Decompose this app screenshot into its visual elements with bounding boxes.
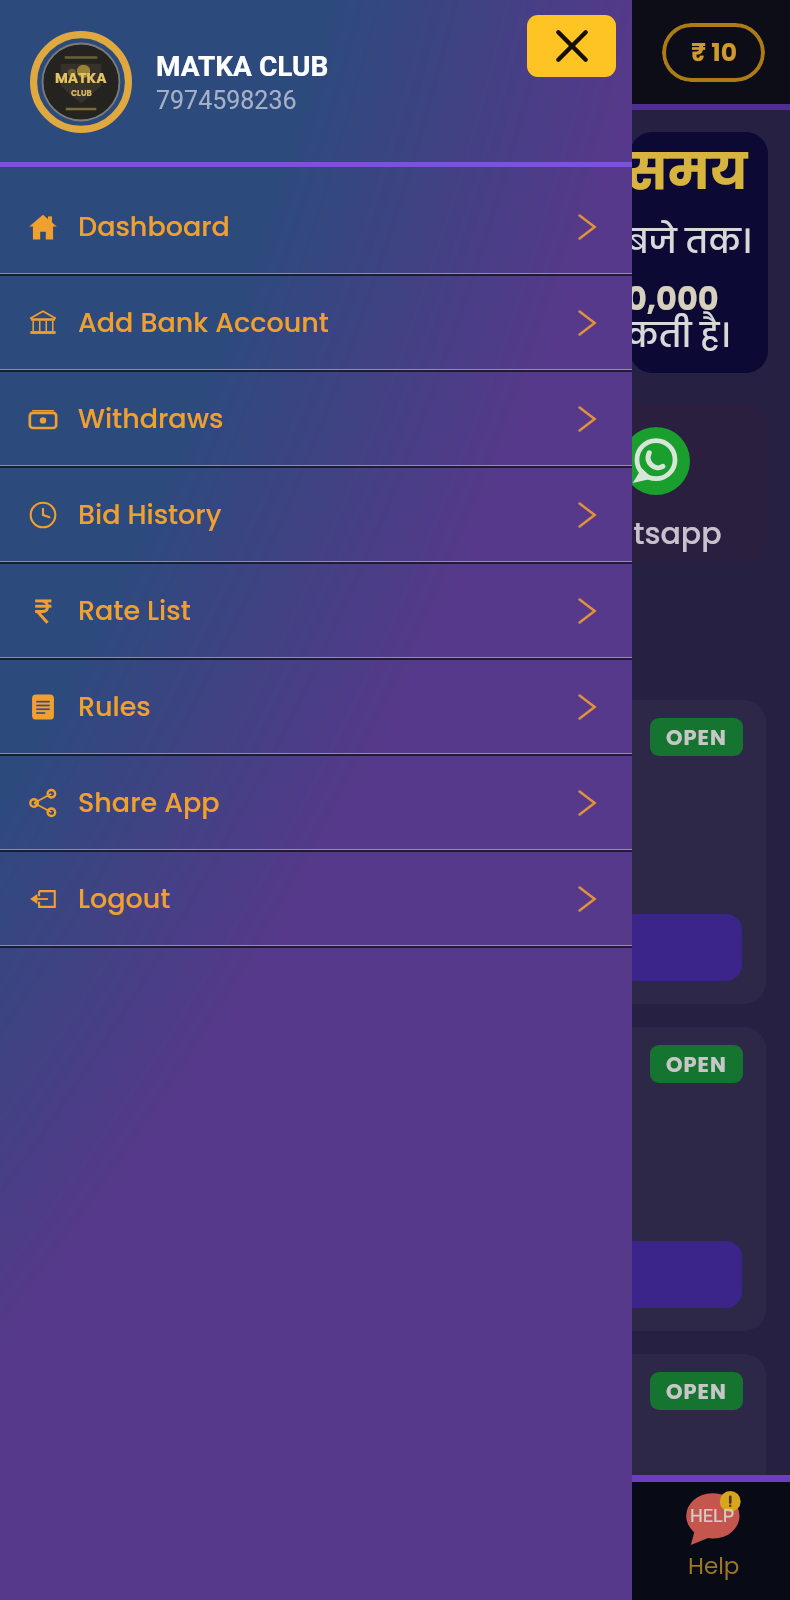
staticText: कती है।: [630, 312, 730, 358]
staticText: 7974598236: [156, 86, 297, 115]
button[interactable]: Logout: [0, 852, 632, 948]
staticText: Dashboard: [78, 208, 230, 246]
button[interactable]: OPEN: [590, 700, 766, 1004]
staticText: CLUB: [71, 88, 92, 99]
staticText: समय: [630, 137, 748, 207]
button[interactable]: OPEN: [590, 1354, 766, 1600]
staticText: MATKA: [55, 68, 107, 88]
button[interactable]: Bid History: [0, 468, 632, 564]
staticText: HELP: [690, 1505, 735, 1526]
staticText: Rate List: [78, 592, 191, 630]
staticText: OPEN: [666, 1377, 727, 1406]
button[interactable]: Withdraws: [0, 372, 632, 468]
staticText: Help: [688, 1550, 740, 1582]
staticText: Add Bank Account: [78, 304, 329, 342]
staticText: atsapp: [613, 513, 722, 555]
staticText: Bid History: [78, 496, 222, 534]
button[interactable]: Rules: [0, 660, 632, 756]
button[interactable]: Add Bank Account: [0, 276, 632, 372]
staticText: Logout: [78, 880, 171, 918]
staticText: 0,000: [630, 276, 719, 321]
button[interactable]: Share App: [0, 756, 632, 852]
button[interactable]: ₹ 10: [662, 23, 765, 82]
staticText: Withdraws: [78, 400, 224, 438]
staticText: OPEN: [666, 723, 727, 752]
staticText: Share App: [78, 784, 220, 822]
button[interactable]: Dashboard: [0, 180, 632, 276]
button[interactable]: OPEN: [590, 1027, 766, 1331]
button[interactable]: HELP: [680, 1482, 750, 1540]
button[interactable]: Rate List: [0, 564, 632, 660]
button[interactable]: atsapp: [600, 403, 767, 562]
staticText: ₹ 10: [691, 35, 737, 70]
button[interactable]: Close drawer: [527, 15, 616, 77]
staticText: MATKA CLUB: [156, 50, 329, 83]
staticText: Rules: [78, 688, 151, 726]
staticText: बजे तक।: [630, 218, 751, 264]
staticText: OPEN: [666, 1050, 727, 1079]
